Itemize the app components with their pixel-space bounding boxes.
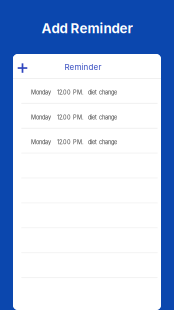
staticText: Monday 12.00 PM. diet change: [31, 114, 117, 121]
button[interactable]: Add reminder: [12, 56, 32, 80]
staticText: Reminder: [64, 62, 101, 72]
button[interactable]: Monday 12.00 PM. diet change: [13, 129, 161, 153]
button[interactable]: Monday 12.00 PM. diet change: [13, 104, 161, 128]
button[interactable]: Monday 12.00 PM. diet change: [13, 79, 161, 103]
staticText: Monday 12.00 PM. diet change: [31, 89, 117, 96]
staticText: Monday 12.00 PM. diet change: [31, 139, 117, 146]
staticText: Add Reminder: [41, 20, 132, 36]
